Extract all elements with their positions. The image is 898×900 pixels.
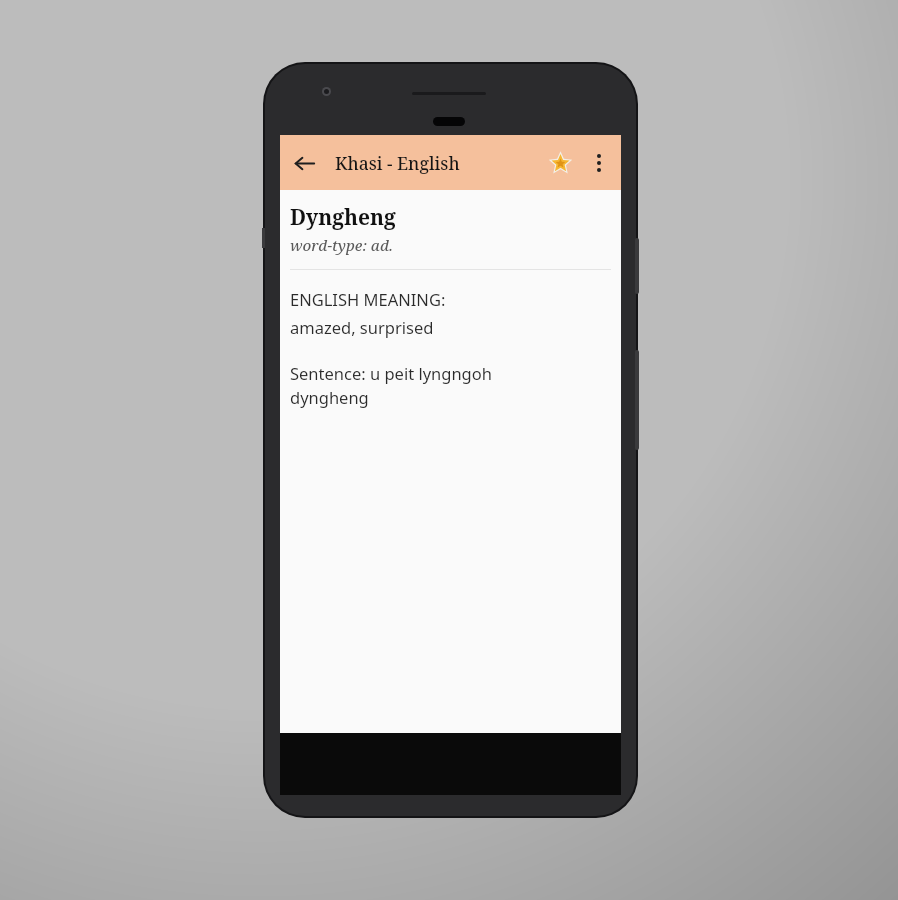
staticText: amazed, surprised — [290, 316, 434, 338]
staticText: word-type: ad. — [290, 235, 393, 255]
staticText: ENGLISH MEANING: — [290, 288, 446, 310]
staticText: Sentence: u peit lyngngoh dyngheng — [290, 362, 524, 409]
staticText: Khasi - English — [335, 151, 460, 175]
staticText: Dyngheng — [290, 203, 396, 232]
button[interactable]: Back — [284, 143, 324, 183]
button[interactable]: Favorite — [541, 144, 579, 182]
button[interactable]: More options — [581, 145, 617, 181]
